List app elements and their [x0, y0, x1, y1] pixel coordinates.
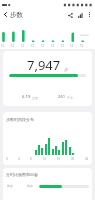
staticText: 4 — [18, 157, 20, 161]
staticText: 12 — [61, 44, 64, 48]
staticText: 12 — [31, 44, 34, 48]
staticText: 12 — [1, 44, 4, 48]
staticText: 12 — [11, 44, 14, 48]
button[interactable]: Share — [65, 10, 75, 20]
staticText: 20 — [71, 157, 75, 161]
staticText: 步 — [64, 67, 68, 72]
staticText: 7,947 — [27, 56, 61, 74]
staticText: 散步 — [7, 184, 13, 188]
staticText: 公里 — [32, 96, 38, 100]
staticText: 分时比例图和目标 — [6, 172, 38, 177]
button[interactable]: Back — [1, 10, 10, 19]
staticText: 步数 — [10, 11, 23, 19]
staticText: 24 — [85, 157, 89, 161]
staticText: 12 — [21, 44, 24, 48]
staticText: 12 — [51, 44, 54, 48]
staticText: 8 — [30, 157, 32, 161]
staticText: 16 — [57, 157, 61, 161]
button[interactable]: Statistics — [75, 10, 85, 20]
staticText: 0 — [6, 157, 8, 161]
staticText: 跑步 — [27, 184, 33, 188]
staticText: 12 — [70, 44, 73, 48]
button[interactable]: More options — [85, 10, 94, 19]
staticText: 千卡 — [67, 96, 73, 100]
staticText: 6.19 — [22, 94, 31, 100]
staticText: 12 — [43, 157, 47, 161]
staticText: 261 — [58, 94, 66, 100]
staticText: 12 — [80, 44, 83, 48]
staticText: 12 — [41, 44, 44, 48]
staticText: 步数时间段分布 — [6, 117, 34, 122]
